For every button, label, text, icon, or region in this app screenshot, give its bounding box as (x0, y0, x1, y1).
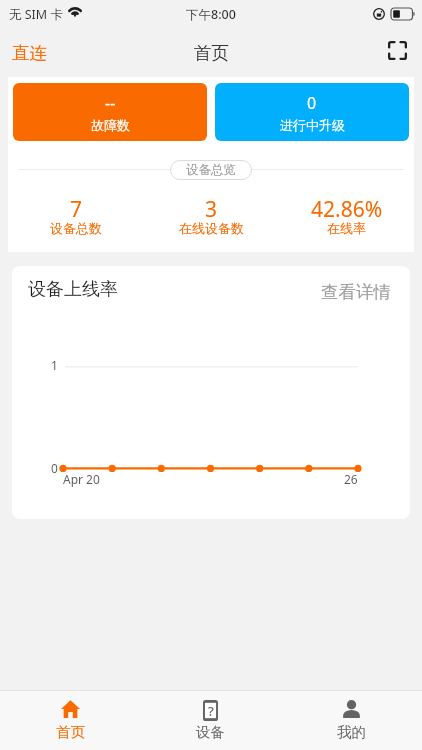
button[interactable]: 查看详情 (315, 275, 397, 309)
button[interactable]: 我的 (281, 691, 422, 750)
staticText: 0 (307, 92, 317, 114)
staticText: 设备 (196, 723, 225, 741)
staticText: 首页 (194, 42, 229, 64)
staticText: 设备总数 (50, 220, 102, 236)
button[interactable]: 0 (215, 83, 409, 141)
staticText: 进行中升级 (280, 117, 345, 133)
staticText: 直连 (12, 42, 47, 64)
button[interactable]: -- (13, 83, 207, 141)
staticText: 故障数 (91, 117, 130, 133)
button[interactable]: 首页 (0, 691, 140, 750)
staticText: 设备上线率 (28, 278, 118, 301)
staticText: 42.86% (311, 195, 383, 224)
staticText: 7 (70, 195, 83, 224)
staticText: 0 (51, 460, 58, 476)
staticText: 26 (344, 471, 358, 487)
staticText: 在线率 (327, 220, 366, 236)
button[interactable]: ? (140, 691, 281, 750)
staticText: 查看详情 (321, 281, 391, 303)
staticText: 下午8:00 (186, 6, 236, 23)
staticText: ? (208, 702, 214, 720)
staticText: Apr 20 (63, 471, 100, 487)
staticText: 首页 (56, 723, 85, 741)
button[interactable]: 直连 (0, 34, 59, 72)
staticText: 无 SIM 卡 (9, 6, 63, 23)
staticText: -- (105, 92, 116, 114)
button[interactable]: Scan QR code (376, 35, 422, 70)
staticText: 设备总览 (186, 162, 236, 178)
staticText: 3 (205, 195, 218, 224)
staticText: 在线设备数 (179, 220, 244, 236)
staticText: 我的 (337, 723, 366, 741)
staticText: 1 (51, 357, 58, 373)
